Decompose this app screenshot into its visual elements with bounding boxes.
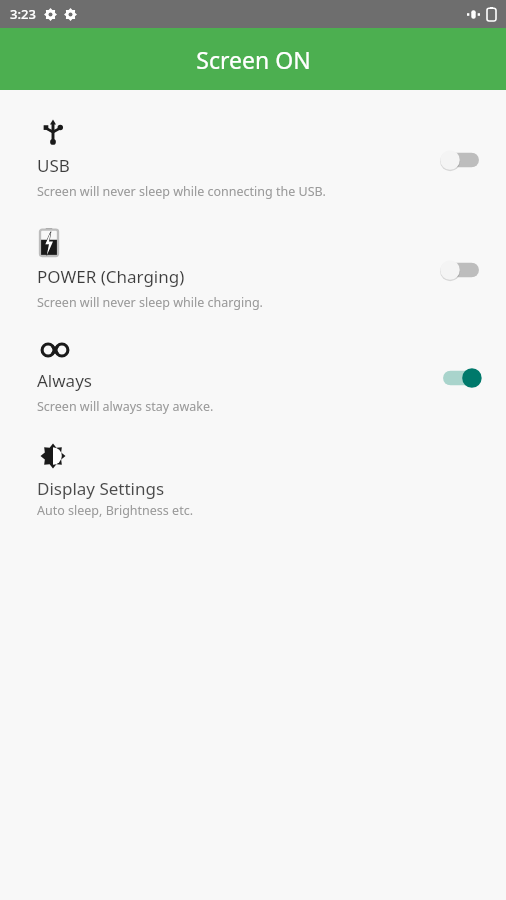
button[interactable]: POWER (Charging) [0,228,506,311]
button[interactable]: Display Settings [0,443,506,519]
staticText: Screen will always stay awake. [37,398,214,415]
button[interactable]: Always [0,340,506,415]
staticText: Always [37,369,92,392]
button[interactable]: Toggle on [438,363,484,393]
staticText: Auto sleep, Brightness etc. [37,502,193,519]
staticText: 3:23 [10,5,36,23]
button[interactable]: USB [0,119,506,200]
staticText: USB [37,154,70,177]
button[interactable]: Toggle off [438,145,484,175]
button[interactable]: Toggle off [438,255,484,285]
staticText: Display Settings [37,477,165,500]
staticText: POWER (Charging) [37,265,185,288]
staticText: Screen will never sleep while charging. [37,294,263,311]
staticText: Screen ON [196,44,311,75]
staticText: Screen will never sleep while connecting… [37,183,326,200]
